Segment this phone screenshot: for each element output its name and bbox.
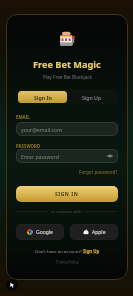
button[interactable]: Privacy Policy bbox=[56, 259, 79, 264]
staticText: Google bbox=[36, 229, 53, 236]
staticText: Don't have an account? bbox=[35, 248, 83, 254]
button[interactable]: Forgot password? bbox=[79, 169, 118, 175]
button[interactable]: SIGN IN bbox=[16, 186, 118, 202]
button[interactable]: Sign Up bbox=[83, 248, 100, 254]
button[interactable]: Apple bbox=[70, 224, 118, 240]
staticText: SIGN IN bbox=[55, 191, 79, 198]
staticText: Enter password bbox=[21, 153, 59, 160]
staticText: EMAIL bbox=[16, 114, 30, 120]
button[interactable]: Google bbox=[16, 224, 64, 240]
button[interactable]: Enter password bbox=[16, 149, 118, 163]
button[interactable]: Sign Up bbox=[67, 91, 116, 103]
staticText: Sign In bbox=[34, 94, 52, 101]
staticText: Sign Up bbox=[82, 94, 102, 101]
staticText: PASSWORD bbox=[16, 143, 41, 149]
staticText: your@email.com bbox=[21, 126, 63, 133]
staticText: or continue with bbox=[51, 209, 82, 214]
button[interactable]: Sign In bbox=[18, 91, 67, 103]
staticText: Privacy Policy bbox=[56, 259, 79, 264]
staticText: Sign Up bbox=[83, 248, 100, 254]
button[interactable]: Back bbox=[6, 279, 18, 291]
button[interactable]: your@email.com bbox=[16, 122, 118, 136]
staticText: Free Bet Magic bbox=[33, 58, 101, 71]
staticText: Apple bbox=[92, 229, 106, 236]
staticText: Play Free Bet Blackjack bbox=[43, 74, 92, 80]
staticText: Forgot password? bbox=[79, 169, 118, 175]
button[interactable]: Show password bbox=[107, 154, 113, 158]
